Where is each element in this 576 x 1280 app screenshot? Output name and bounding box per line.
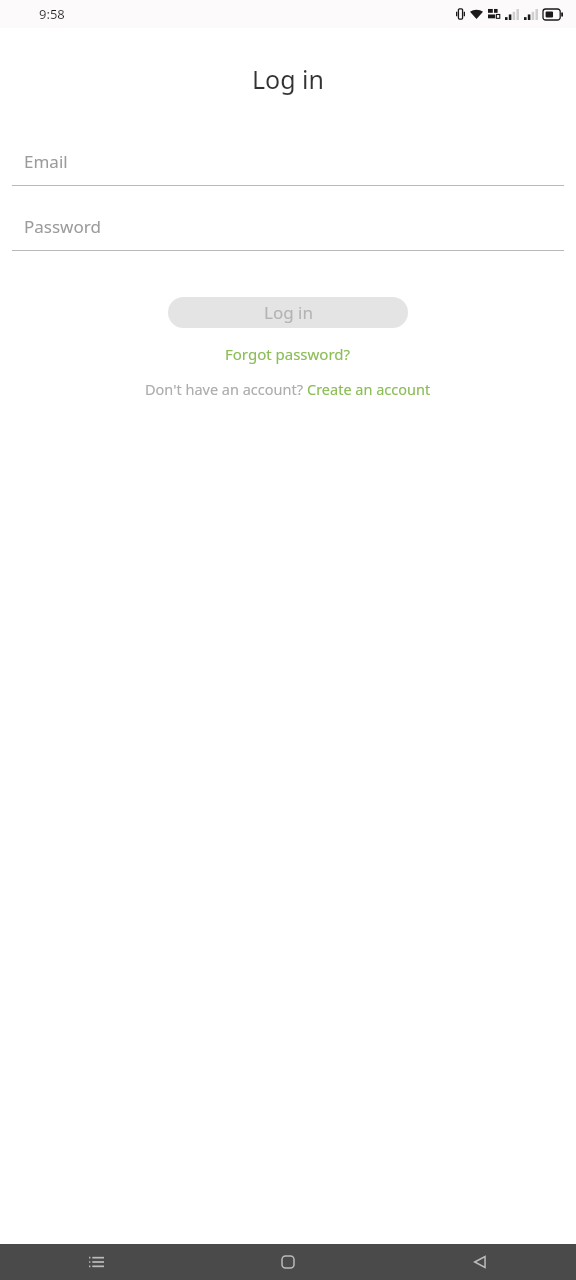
- button[interactable]: Forgot password?: [215, 341, 361, 367]
- button[interactable]: Back: [384, 1244, 576, 1280]
- staticText: 9:58: [39, 5, 65, 23]
- staticText: Email: [24, 150, 68, 173]
- staticText: Don't have an account?: [145, 379, 307, 399]
- staticText: Log in: [264, 301, 313, 324]
- button[interactable]: Log in: [168, 297, 408, 328]
- staticText: Log in: [252, 62, 325, 96]
- button[interactable]: Email: [12, 143, 564, 186]
- button[interactable]: Home: [192, 1244, 384, 1280]
- staticText: Forgot password?: [225, 344, 351, 364]
- staticText: Password: [24, 215, 101, 238]
- staticText: Create an account: [307, 379, 431, 399]
- button[interactable]: Password: [12, 208, 564, 251]
- button[interactable]: Recent apps: [0, 1244, 192, 1280]
- button[interactable]: Create an account: [307, 379, 431, 399]
